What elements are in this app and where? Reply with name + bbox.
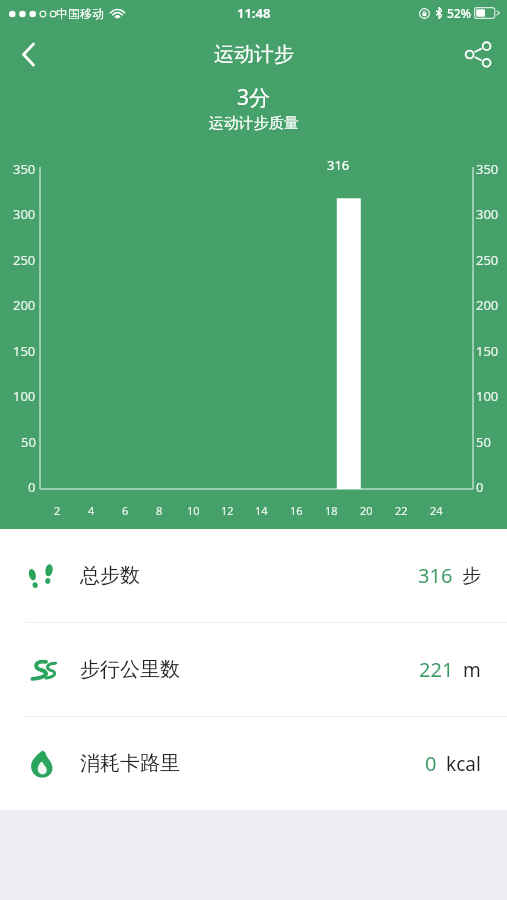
staticText: 200 [476, 296, 499, 314]
staticText: 50 [21, 433, 36, 451]
staticText: 50 [476, 433, 491, 451]
button[interactable]: Walking distance [0, 623, 507, 716]
staticText: 150 [476, 342, 499, 360]
button[interactable]: Share [450, 26, 507, 83]
staticText: 16 [290, 503, 303, 518]
staticText: 0 [476, 478, 484, 496]
staticText: 6 [122, 503, 129, 518]
staticText: 100 [476, 387, 499, 405]
other: Total steps [25, 559, 59, 593]
staticText: 11:48 [237, 4, 271, 22]
staticText: 100 [13, 387, 36, 405]
staticText: 316 [418, 562, 453, 589]
staticText: 300 [13, 205, 36, 223]
staticText: 0 [425, 750, 437, 777]
staticText: 300 [476, 205, 499, 223]
staticText: kcal [446, 751, 481, 777]
other: Calories burned [25, 747, 59, 781]
button[interactable]: Back [0, 26, 57, 83]
staticText: m [463, 657, 481, 683]
staticText: 250 [13, 251, 36, 269]
staticText: 350 [13, 160, 36, 178]
staticText: 250 [476, 251, 499, 269]
staticText: 步 [462, 564, 481, 588]
staticText: 221 [419, 656, 454, 683]
staticText: 2 [54, 503, 61, 518]
staticText: 消耗卡路里 [80, 751, 180, 776]
staticText: 14 [255, 503, 268, 518]
staticText: 350 [476, 160, 499, 178]
staticText: 20 [360, 503, 373, 518]
staticText: 18 [325, 503, 338, 518]
staticText: 52% [447, 5, 471, 21]
staticText: 4 [88, 503, 95, 518]
staticText: 150 [13, 342, 36, 360]
staticText: 中国移动 [56, 6, 104, 21]
staticText: 22 [395, 503, 408, 518]
staticText: 总步数 [80, 563, 140, 588]
staticText: 200 [13, 296, 36, 314]
staticText: 运动计步质量 [0, 114, 507, 133]
button[interactable]: Calories burned [0, 717, 507, 810]
button[interactable]: Total steps [0, 529, 507, 622]
staticText: 0 [28, 478, 36, 496]
staticText: 3分 [0, 83, 507, 112]
staticText: 24 [430, 503, 443, 518]
staticText: 316 [327, 156, 350, 174]
staticText: 12 [221, 503, 234, 518]
staticText: 10 [187, 503, 200, 518]
staticText: 运动计步 [214, 42, 294, 67]
staticText: 8 [156, 503, 163, 518]
staticText: 步行公里数 [80, 657, 180, 682]
other: Walking distance [25, 653, 59, 687]
